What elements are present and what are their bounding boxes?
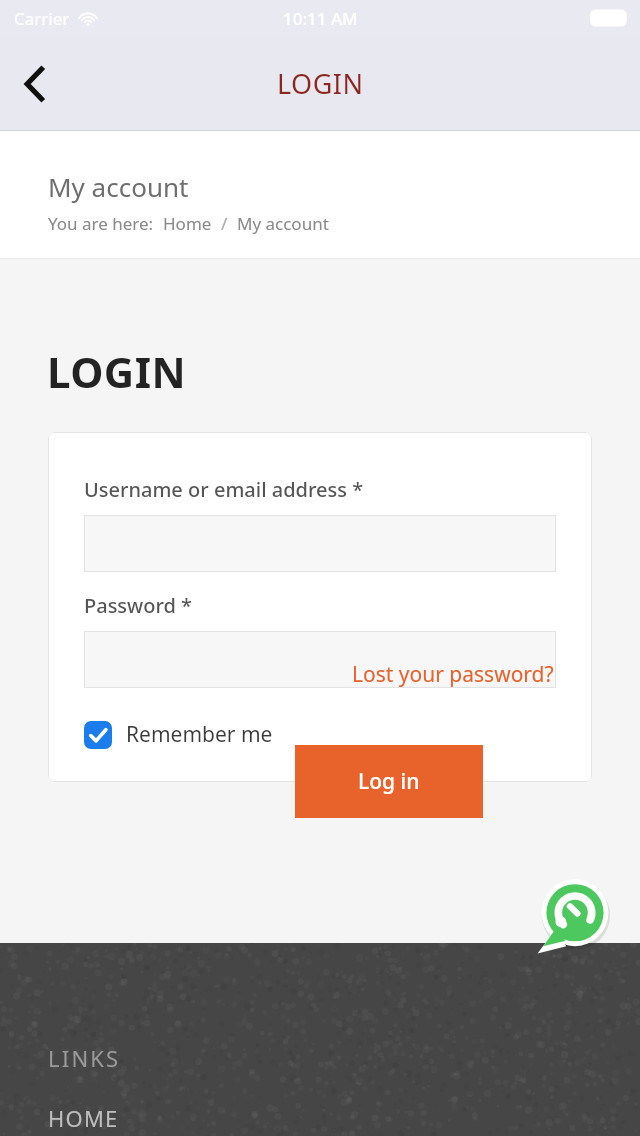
staticText: / — [221, 212, 228, 235]
button[interactable]: HOME — [48, 1103, 119, 1133]
staticText: Home — [163, 212, 212, 235]
staticText: You are here: — [48, 212, 154, 235]
staticText: Lost your password? — [352, 660, 554, 689]
staticText: Username or email address * — [84, 476, 364, 503]
button[interactable]: Chat on WhatsApp — [537, 877, 613, 953]
staticText: LINKS — [48, 1043, 121, 1073]
staticText: HOME — [48, 1103, 119, 1133]
button[interactable]: Home — [163, 212, 212, 235]
button[interactable]: Lost your password? — [352, 660, 554, 689]
button[interactable] — [84, 631, 556, 688]
button[interactable]: Log in — [295, 745, 483, 818]
staticText: Carrier — [14, 7, 70, 30]
button[interactable]: Remember me — [84, 720, 273, 749]
staticText: My account — [237, 212, 329, 235]
button[interactable] — [84, 515, 556, 572]
staticText: Log in — [358, 767, 420, 796]
button[interactable]: Back — [0, 48, 72, 120]
staticText: My account — [48, 169, 189, 204]
staticText: Remember me — [126, 720, 273, 749]
staticText: LOGIN — [277, 65, 364, 102]
staticText: 10:11 AM — [283, 7, 358, 30]
staticText: Password * — [84, 592, 193, 619]
staticText: LOGIN — [47, 343, 187, 400]
